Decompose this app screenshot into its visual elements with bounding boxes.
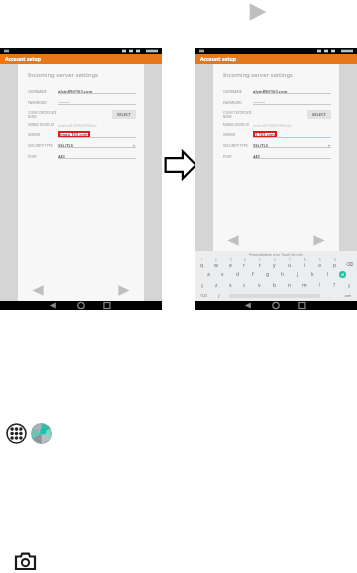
button[interactable]: p xyxy=(327,258,342,269)
staticText: n xyxy=(288,282,292,289)
staticText: SECURITY TYPE xyxy=(28,143,58,148)
button[interactable]: All apps xyxy=(6,423,27,444)
button[interactable]: ⇧ xyxy=(195,280,209,291)
staticText: 4 xyxy=(244,258,246,262)
staticText: d xyxy=(236,271,240,278)
staticText: v xyxy=(258,282,261,289)
button[interactable]: Previous xyxy=(225,234,241,247)
button[interactable]: u xyxy=(282,258,297,269)
button[interactable]: Camera xyxy=(31,423,52,444)
button[interactable]: SECURITY TYPE xyxy=(223,140,331,151)
button[interactable]: x xyxy=(223,280,237,291)
staticText: CLIENT CERTIFICATE xyxy=(223,111,252,115)
button[interactable]: . xyxy=(322,291,338,301)
staticText: imap.163.com xyxy=(60,132,88,137)
button[interactable]: b xyxy=(267,280,282,291)
button[interactable]: y xyxy=(267,258,282,269)
button[interactable]: Account setup xyxy=(0,54,162,64)
button[interactable]: r xyxy=(237,258,252,269)
button[interactable]: ?123 xyxy=(195,291,211,301)
button[interactable]: k xyxy=(305,269,320,280)
button[interactable]: .com xyxy=(338,291,357,301)
staticText: 0 xyxy=(334,258,336,262)
staticText: Account setup xyxy=(5,56,41,63)
button[interactable]: Play xyxy=(245,1,271,23)
staticText: q xyxy=(200,262,204,269)
button[interactable]: n xyxy=(282,280,297,291)
button[interactable]: SELECT xyxy=(312,112,326,117)
staticText: g xyxy=(266,271,270,278)
button[interactable]: Previous xyxy=(30,284,46,297)
button[interactable]: Account setup xyxy=(195,54,357,64)
button[interactable]: g xyxy=(260,269,275,280)
button[interactable]: PORT xyxy=(28,151,136,162)
button[interactable]: d xyxy=(230,269,245,280)
button[interactable]: ⏎ xyxy=(335,269,350,280)
button[interactable]: c xyxy=(237,280,252,291)
staticText: 1 xyxy=(201,258,203,262)
button[interactable]: s xyxy=(215,269,230,280)
staticText: .com xyxy=(344,294,352,298)
button[interactable]: Next xyxy=(116,284,132,297)
staticText: ?123 xyxy=(200,294,207,298)
staticText: SECURITY TYPE xyxy=(223,143,253,148)
staticText: k xyxy=(311,271,314,278)
button[interactable]: ! xyxy=(312,280,327,291)
button[interactable]: 1.163.com xyxy=(255,132,275,137)
button[interactable]: w xyxy=(209,258,223,269)
staticText: PASSWORD xyxy=(223,100,253,105)
button[interactable]: o xyxy=(312,258,327,269)
staticText: Incoming server settings xyxy=(223,71,293,79)
staticText: alyin89@163.com xyxy=(58,89,93,94)
button[interactable]: v xyxy=(252,280,267,291)
button[interactable]: t xyxy=(252,258,267,269)
button[interactable]: PORT xyxy=(223,151,331,162)
staticText: m xyxy=(302,282,307,289)
button[interactable]: a xyxy=(201,269,215,280)
staticText: •••••••• xyxy=(58,100,71,105)
button[interactable]: / xyxy=(211,291,227,301)
button[interactable]: imap.163.com xyxy=(60,132,88,137)
button[interactable]: e xyxy=(223,258,237,269)
button[interactable]: l xyxy=(320,269,335,280)
button[interactable]: USERNAME xyxy=(223,86,331,97)
staticText: i xyxy=(304,262,306,269)
staticText: 9 xyxy=(319,258,321,262)
staticText: Incoming server settings xyxy=(28,71,98,79)
button[interactable]: PASSWORD xyxy=(223,97,331,108)
staticText: 5 xyxy=(259,258,261,262)
button[interactable]: SECURITY TYPE xyxy=(28,140,136,151)
staticText: PORT xyxy=(28,154,58,159)
button[interactable]: i xyxy=(297,258,312,269)
staticText: SERVER xyxy=(28,132,58,137)
button[interactable]: j xyxy=(290,269,305,280)
button[interactable]: m xyxy=(297,280,312,291)
button[interactable]: z xyxy=(209,280,223,291)
button[interactable]: f xyxy=(245,269,260,280)
staticText: l xyxy=(327,271,329,278)
staticText: android1234567890abc xyxy=(58,123,97,128)
staticText: ! xyxy=(319,282,321,289)
staticText: e xyxy=(229,262,232,269)
staticText: ⇧ xyxy=(347,283,352,289)
staticText: alyin89@163.com xyxy=(253,89,288,94)
staticText: PORT xyxy=(223,154,253,159)
staticText: SSL/TLS xyxy=(58,143,74,148)
button[interactable]: Next xyxy=(311,234,327,247)
button[interactable]: q xyxy=(195,258,209,269)
staticText: PASSWORD xyxy=(28,100,58,105)
button[interactable]: ⌫ xyxy=(342,258,357,269)
button[interactable]: Take photo xyxy=(16,553,35,569)
button[interactable]: ? xyxy=(327,280,342,291)
button[interactable]: ⇧ xyxy=(342,280,357,291)
staticText: ? xyxy=(333,282,336,289)
staticText: o xyxy=(318,262,322,269)
staticText: a xyxy=(207,271,210,278)
staticText: NONE xyxy=(28,115,37,119)
staticText: android1234567890abc xyxy=(253,123,292,128)
button[interactable]: PASSWORD xyxy=(28,97,136,108)
button[interactable]: h xyxy=(275,269,290,280)
button[interactable]: SELECT xyxy=(117,112,131,117)
button[interactable]: USERNAME xyxy=(28,86,136,97)
